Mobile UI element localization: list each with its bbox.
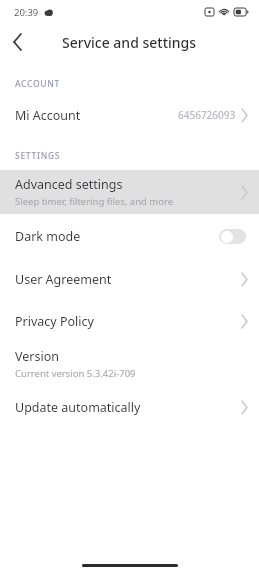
staticText: Service and settings: [62, 33, 197, 52]
staticText: Current version 5.3.42i-709: [15, 367, 136, 380]
button[interactable]: Dark mode: [0, 214, 259, 258]
button[interactable]: User Agreement: [0, 258, 259, 300]
staticText: User Agreement: [15, 271, 112, 288]
staticText: Update automatically: [15, 399, 141, 416]
button[interactable]: Update automatically: [0, 386, 259, 428]
staticText: Sleep timer, filtering files, and more: [15, 195, 174, 208]
button[interactable]: Dark mode toggle: [219, 229, 246, 244]
staticText: Dark mode: [15, 228, 81, 245]
staticText: 20:39: [14, 6, 39, 19]
button[interactable]: Privacy Policy: [0, 300, 259, 342]
staticText: SETTINGS: [15, 150, 61, 162]
button[interactable]: Mi Account: [0, 98, 259, 132]
staticText: Mi Account: [15, 107, 81, 124]
staticText: 6456726093: [178, 108, 236, 122]
staticText: ACCOUNT: [15, 78, 61, 90]
staticText: Privacy Policy: [15, 313, 94, 330]
button[interactable]: Advanced settings: [0, 170, 259, 214]
button[interactable]: Back: [0, 25, 34, 59]
staticText: Advanced settings: [15, 176, 123, 193]
staticText: Version: [15, 348, 59, 365]
button[interactable]: Version: [0, 342, 259, 386]
